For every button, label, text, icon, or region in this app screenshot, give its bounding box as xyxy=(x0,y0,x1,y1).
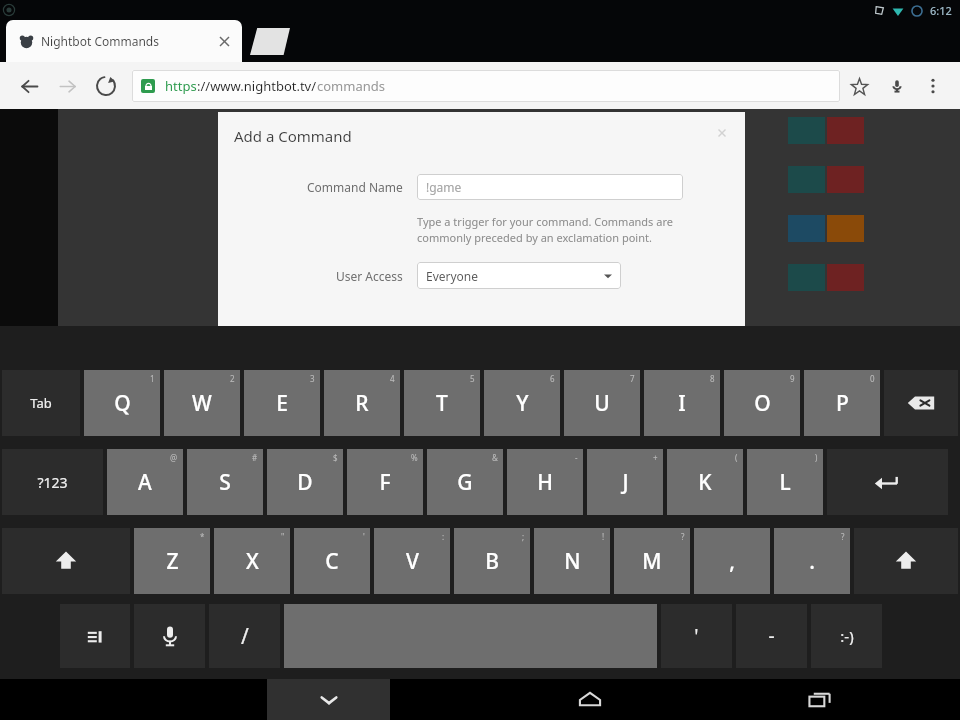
staticText: + xyxy=(653,452,658,463)
staticText: ( xyxy=(735,452,738,463)
staticText: 1 xyxy=(150,373,155,384)
staticText: A xyxy=(138,468,152,497)
staticText: I xyxy=(678,389,686,418)
staticText: ? xyxy=(681,531,685,542)
staticText: Add a Command xyxy=(234,126,352,146)
button[interactable]: 7 xyxy=(564,370,640,436)
button[interactable]: https xyxy=(132,70,840,102)
button[interactable]: 9 xyxy=(724,370,800,436)
staticText: 9 xyxy=(790,373,795,384)
staticText: 4 xyxy=(390,373,395,384)
staticText: ! xyxy=(602,531,605,542)
staticText: ' xyxy=(694,623,699,649)
button[interactable]: - xyxy=(507,449,583,515)
button[interactable]: :-) xyxy=(811,604,882,668)
staticText: " xyxy=(281,531,285,542)
staticText: Command Name xyxy=(307,179,403,195)
button[interactable]: 0 xyxy=(804,370,880,436)
button[interactable]: 1 xyxy=(84,370,160,436)
button[interactable]: Forward xyxy=(48,67,86,105)
staticText: 2 xyxy=(230,373,235,384)
button[interactable]: 6 xyxy=(484,370,560,436)
button[interactable]: " xyxy=(214,528,290,594)
button[interactable]: 8 xyxy=(644,370,720,436)
staticText: J xyxy=(622,468,629,497)
button[interactable]: Nightbot Commands xyxy=(6,20,242,62)
button[interactable]: * xyxy=(134,528,210,594)
staticText: : xyxy=(442,531,445,542)
button[interactable]: : xyxy=(374,528,450,594)
button[interactable]: Home xyxy=(560,679,620,720)
button[interactable]: Hide keyboard xyxy=(267,679,390,720)
staticText: ; xyxy=(522,531,525,542)
button[interactable]: Everyone xyxy=(417,262,621,289)
staticText: :-) xyxy=(840,626,854,646)
button[interactable]: + xyxy=(587,449,663,515)
staticText: P xyxy=(836,389,849,418)
staticText: 7 xyxy=(630,373,635,384)
button[interactable]: Backspace xyxy=(884,370,958,436)
staticText: V xyxy=(406,547,419,576)
button[interactable]: Enter xyxy=(827,449,948,515)
button[interactable]: Close tab xyxy=(214,31,234,51)
staticText: O xyxy=(754,389,771,418)
button[interactable]: Back xyxy=(10,67,48,105)
button[interactable]: % xyxy=(347,449,423,515)
button[interactable]: 4 xyxy=(324,370,400,436)
button[interactable]: Tab xyxy=(2,370,80,436)
button[interactable]: / xyxy=(209,604,280,668)
staticText: % xyxy=(411,452,418,463)
button[interactable]: ! xyxy=(534,528,610,594)
staticText: https xyxy=(165,77,197,95)
button[interactable]: Voice search xyxy=(878,67,916,105)
button[interactable]: , xyxy=(694,528,770,594)
button[interactable]: $ xyxy=(267,449,343,515)
button[interactable]: ?123 xyxy=(2,449,103,515)
staticText: B xyxy=(485,547,499,576)
staticText: Nightbot Commands xyxy=(41,33,159,49)
button[interactable]: ( xyxy=(667,449,743,515)
button[interactable]: 5 xyxy=(404,370,480,436)
staticText: D xyxy=(297,468,313,497)
staticText: @ xyxy=(170,452,178,463)
staticText: T xyxy=(436,389,448,418)
staticText: U xyxy=(594,389,610,418)
staticText: N xyxy=(564,547,581,576)
button[interactable]: Close dialog xyxy=(715,126,729,140)
button[interactable]: ' xyxy=(661,604,732,668)
button[interactable]: Reload xyxy=(86,66,126,106)
staticText: L xyxy=(779,468,791,497)
button[interactable]: Recent apps xyxy=(790,679,850,720)
button[interactable]: More options xyxy=(916,69,950,103)
button[interactable]: !game xyxy=(417,174,683,200)
button[interactable]: Voice input xyxy=(134,604,205,668)
staticText: ? xyxy=(841,531,845,542)
staticText: S xyxy=(219,468,231,497)
button[interactable]: # xyxy=(187,449,263,515)
staticText: W xyxy=(192,389,212,418)
button[interactable]: Switch keyboard xyxy=(60,604,130,668)
button[interactable]: ' xyxy=(294,528,370,594)
staticText: Tab xyxy=(30,394,52,412)
staticText: M xyxy=(642,547,662,576)
button[interactable]: Bookmark xyxy=(840,67,878,105)
button[interactable]: Shift xyxy=(2,528,130,594)
button[interactable]: ) xyxy=(747,449,823,515)
button[interactable]: New tab xyxy=(250,28,290,55)
staticText: X xyxy=(246,547,259,576)
button[interactable]: ? xyxy=(774,528,850,594)
staticText: E xyxy=(276,389,288,418)
button[interactable]: ? xyxy=(614,528,690,594)
button[interactable]: @ xyxy=(107,449,183,515)
button[interactable]: & xyxy=(427,449,503,515)
staticText: $ xyxy=(333,452,338,463)
button[interactable]: - xyxy=(736,604,807,668)
button[interactable]: ; xyxy=(454,528,530,594)
staticText: ?123 xyxy=(37,473,68,492)
button[interactable]: Shift xyxy=(854,528,958,594)
staticText: * xyxy=(200,531,205,542)
button[interactable]: 3 xyxy=(244,370,320,436)
button[interactable]: 2 xyxy=(164,370,240,436)
staticText: - xyxy=(768,623,775,649)
